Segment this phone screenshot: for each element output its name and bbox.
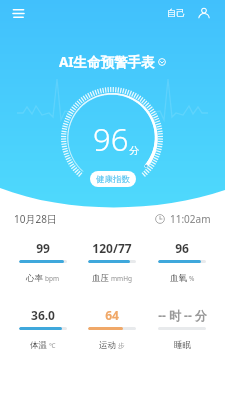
staticText: 健康指数: [96, 174, 130, 185]
staticText: 96: [93, 118, 129, 160]
staticText: 自己: [167, 7, 185, 18]
button[interactable]: 自己: [164, 4, 188, 21]
staticText: bpm: [45, 274, 60, 283]
staticText: AI生命预警手表: [59, 53, 155, 71]
button[interactable]: 120/77: [77, 240, 147, 284]
staticText: 睡眠: [174, 340, 191, 351]
staticText: 120/77: [92, 240, 132, 256]
button[interactable]: 99: [8, 240, 77, 284]
button[interactable]: 36.0: [8, 307, 77, 351]
staticText: 64: [105, 307, 119, 323]
staticText: 10月28日: [14, 212, 57, 226]
staticText: 分: [129, 144, 139, 157]
button[interactable]: 健康指数: [90, 171, 136, 187]
button[interactable]: 64: [77, 307, 147, 351]
button[interactable]: 96: [147, 240, 217, 284]
staticText: mmHg: [111, 274, 132, 283]
staticText: 运动: [99, 340, 116, 351]
staticText: 96: [175, 240, 189, 256]
staticText: 心率: [26, 273, 43, 284]
button[interactable]: Profile: [194, 3, 214, 23]
staticText: 体温: [30, 340, 47, 351]
staticText: 99: [36, 240, 50, 256]
button[interactable]: -- 时 -- 分: [147, 307, 217, 351]
staticText: %: [189, 274, 195, 283]
staticText: 步: [118, 342, 125, 350]
staticText: 36.0: [31, 307, 55, 323]
staticText: 11:02am: [170, 212, 211, 226]
staticText: ℃: [49, 341, 56, 350]
staticText: 血氧: [170, 273, 187, 284]
button[interactable]: Menu: [6, 1, 30, 25]
staticText: -- 时 -- 分: [158, 307, 207, 323]
staticText: 血压: [92, 273, 109, 284]
